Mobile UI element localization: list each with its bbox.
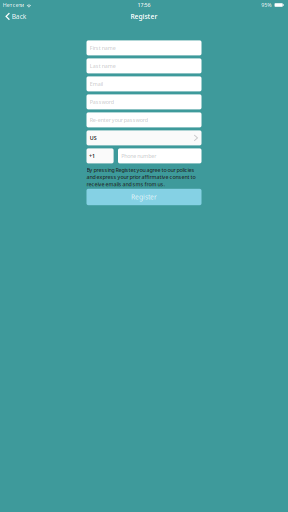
staticText: 17:56 xyxy=(137,1,150,9)
button[interactable]: +1 xyxy=(86,148,114,163)
staticText: Last name xyxy=(90,62,116,69)
staticText: Phone number xyxy=(121,152,156,159)
staticText: Re-enter your password xyxy=(90,116,148,123)
button[interactable]: US xyxy=(86,130,201,145)
staticText: +1 xyxy=(89,152,95,159)
button[interactable]: Register xyxy=(86,189,201,205)
staticText: Back xyxy=(12,12,27,21)
staticText: Register xyxy=(130,12,157,21)
staticText: By pressing Register, you agree to our p… xyxy=(86,166,195,188)
button[interactable]: Back xyxy=(0,10,46,23)
staticText: Password xyxy=(90,98,114,105)
staticText: Нет сети xyxy=(3,1,24,9)
staticText: US xyxy=(90,134,97,141)
staticText: Register xyxy=(131,193,157,201)
staticText: 95% xyxy=(261,1,271,9)
staticText: First name xyxy=(90,44,116,51)
staticText: Email xyxy=(90,80,103,87)
